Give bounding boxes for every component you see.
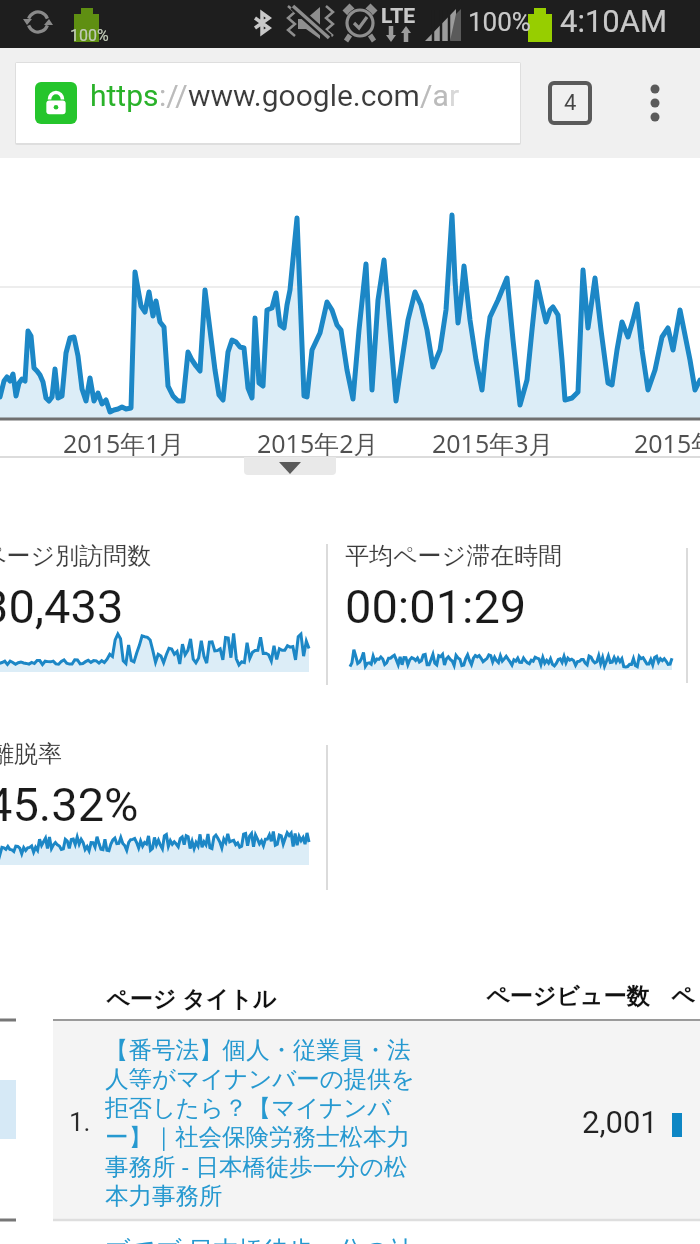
button[interactable]: More options <box>630 78 680 128</box>
button[interactable]: 【番号法】個人・従業員・法人等がマイナンバーの提供を拒否したら？【マイナンバー】… <box>105 1035 417 1211</box>
staticText: 平均ページ滞在時間 <box>345 541 563 571</box>
staticText: ページ別訪問数 <box>0 541 152 571</box>
button[interactable]: Tabs <box>550 83 590 123</box>
staticText: www.google.com <box>188 78 420 113</box>
staticText: https <box>90 78 159 113</box>
staticText: ページ タイトル <box>106 982 277 1013</box>
staticText: 100% <box>70 26 109 45</box>
button[interactable]: https <box>15 62 521 145</box>
staticText: 2015年1月 <box>63 426 185 460</box>
staticText: 2015年4 <box>634 426 700 460</box>
staticText: :// <box>159 78 188 113</box>
staticText: 2015年2月 <box>257 426 379 460</box>
staticText: ペ <box>671 982 695 1011</box>
staticText: 30,433 <box>0 579 124 634</box>
staticText: LTE <box>381 4 416 29</box>
staticText: ページビュー数 <box>486 982 650 1011</box>
staticText: 00:01:29 <box>345 579 527 634</box>
staticText: /a <box>420 78 449 113</box>
staticText: r <box>449 78 460 113</box>
staticText: 2015年3月 <box>432 426 554 460</box>
staticText: 1. <box>69 1107 91 1137</box>
staticText: 4:10AM <box>560 3 668 39</box>
staticText: 100% <box>468 7 531 37</box>
staticText: 直帰離脱率 <box>0 739 62 769</box>
staticText: 45.32% <box>0 777 139 832</box>
staticText: 4 <box>564 90 577 116</box>
button[interactable]: ブでブ 日本橋徒歩一分の社 <box>105 1232 435 1244</box>
button[interactable]: Expand chart <box>244 457 336 475</box>
staticText: 2,001 <box>582 1104 658 1140</box>
